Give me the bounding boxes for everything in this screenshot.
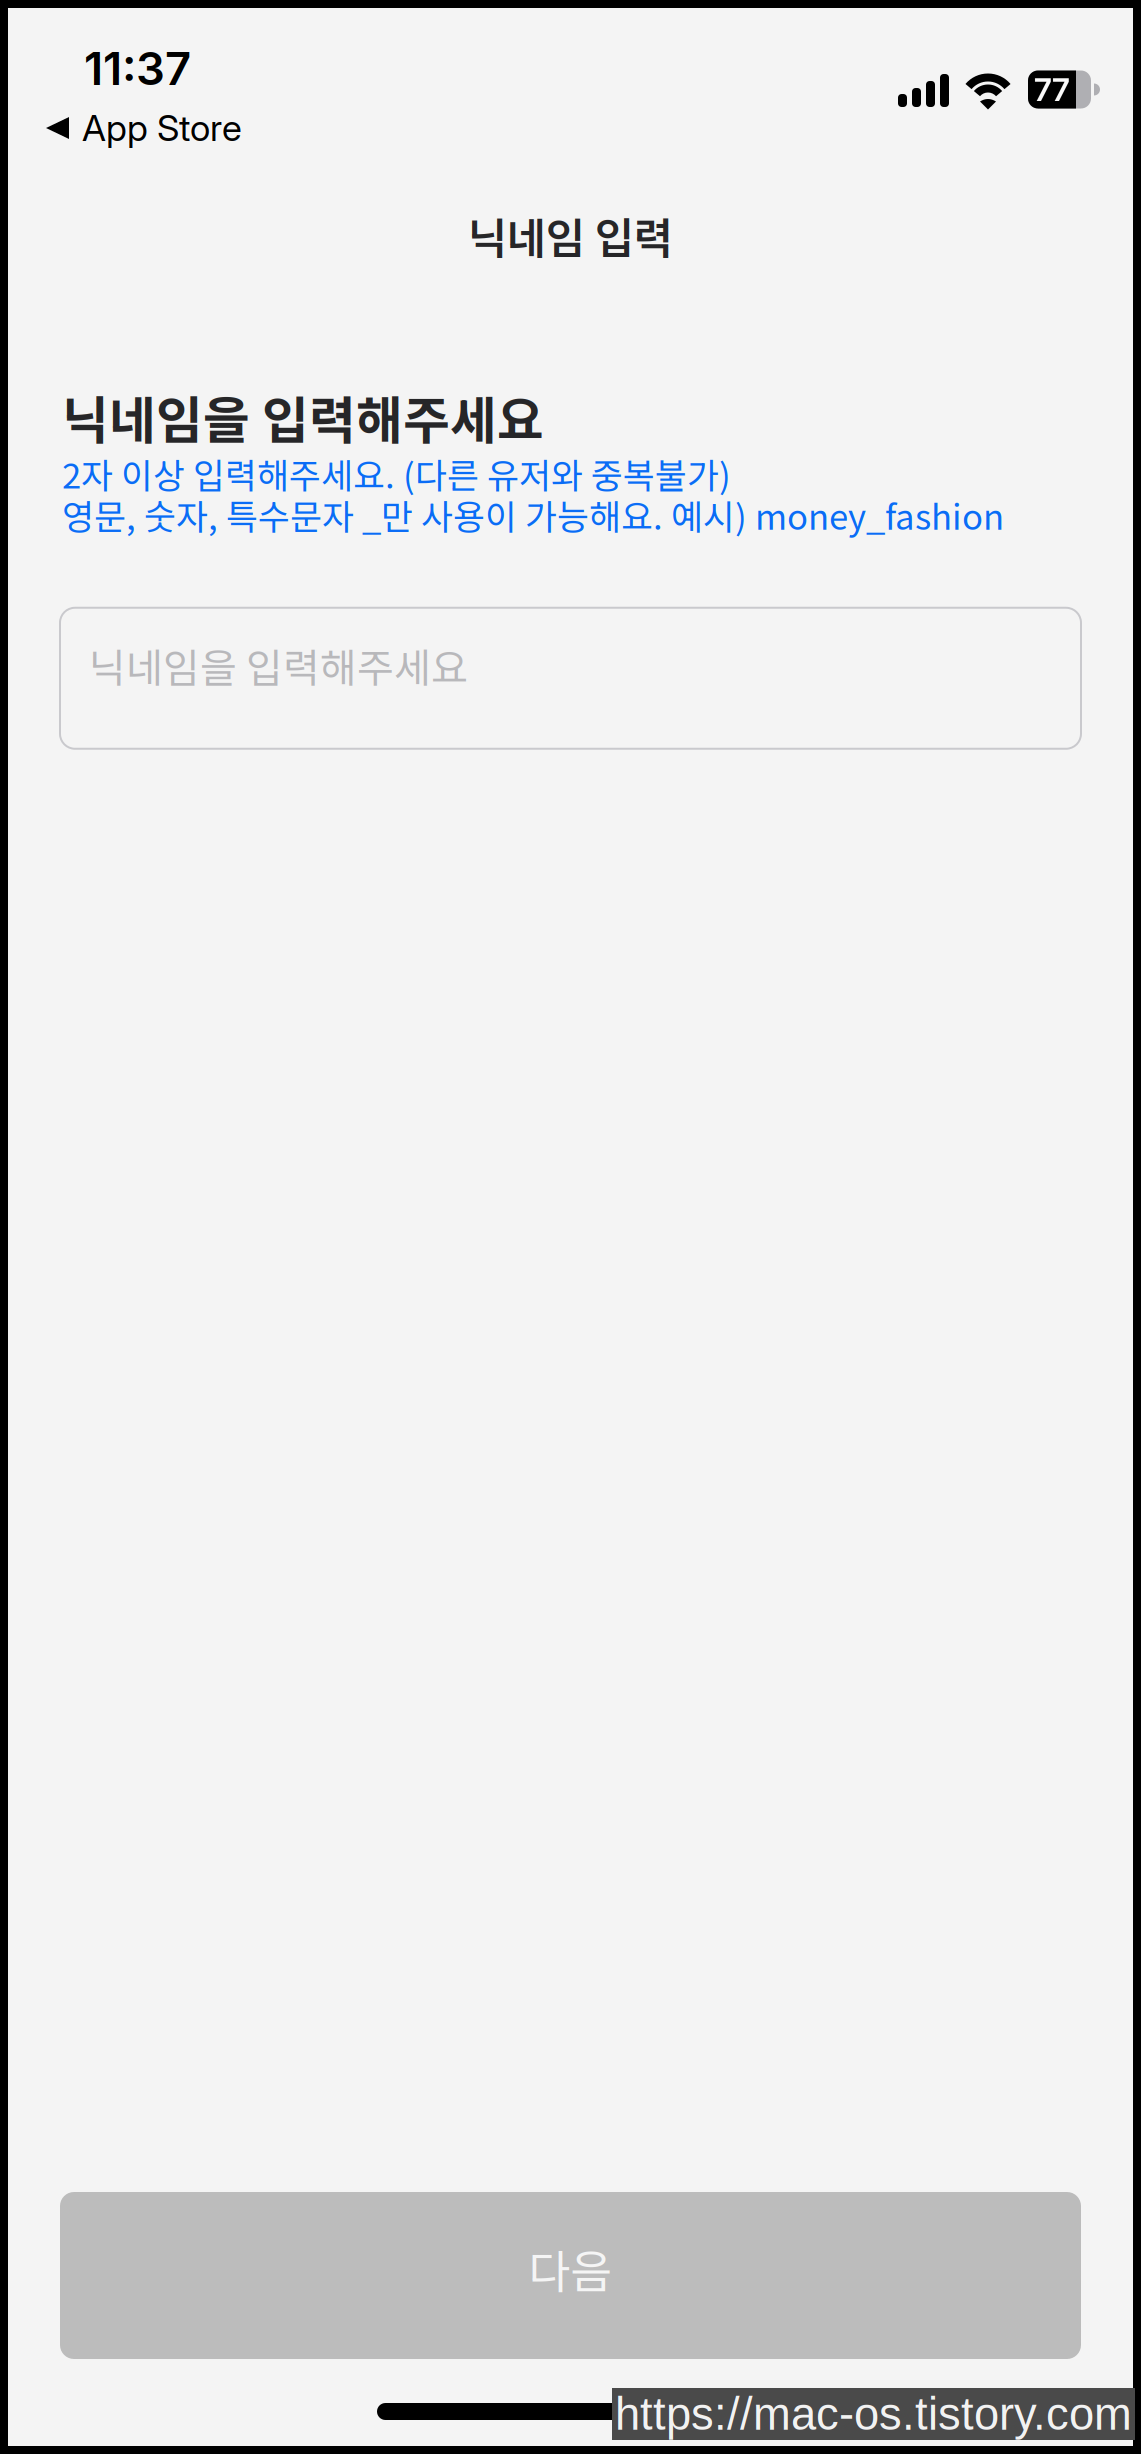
staticText: 닉네임을 입력해주세요	[62, 380, 544, 453]
staticText: App Store	[82, 106, 242, 150]
button[interactable]: 다음	[60, 2192, 1081, 2359]
button[interactable]: Back to App Store	[46, 114, 242, 142]
button[interactable]: 닉네임을 입력해주세요	[60, 608, 1081, 749]
staticText: 2자 이상 입력해주세요. (다른 유저와 중복불가)	[62, 448, 731, 499]
staticText: https://mac-os.tistory.com	[615, 2389, 1132, 2439]
staticText: 다음	[528, 2236, 612, 2301]
staticText: 닉네임을 입력해주세요	[89, 636, 468, 694]
staticText: 11:37	[84, 41, 191, 96]
staticText: 영문, 숫자, 특수문자 _만 사용이 가능해요. 예시) money_fash…	[62, 490, 1004, 540]
staticText: 77	[1034, 70, 1070, 109]
staticText: 닉네임 입력	[468, 205, 673, 266]
